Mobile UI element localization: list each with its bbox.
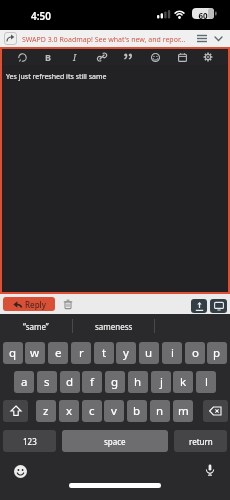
staticText: k — [180, 374, 187, 390]
button[interactable] — [95, 50, 109, 64]
staticText: g — [111, 374, 119, 390]
staticText: return — [189, 436, 213, 447]
button[interactable] — [210, 299, 227, 313]
staticText: c — [89, 403, 95, 419]
staticText: r — [79, 345, 84, 361]
staticText: l — [205, 374, 208, 390]
button[interactable] — [61, 297, 75, 311]
staticText: w — [30, 345, 40, 361]
button[interactable]: p — [207, 342, 227, 364]
button[interactable]: f — [82, 371, 102, 393]
button[interactable]: i — [162, 342, 182, 364]
staticText: t — [102, 345, 107, 361]
button[interactable]: SWAPD 3.0 Roadmap! See what's new, and r… — [0, 30, 230, 47]
staticText: i — [171, 345, 174, 361]
button[interactable]: b — [127, 400, 147, 422]
button[interactable]: h — [128, 371, 148, 393]
staticText: h — [134, 374, 142, 390]
staticText: d — [66, 374, 74, 390]
staticText: f — [90, 374, 94, 390]
staticText: j — [160, 374, 163, 390]
button[interactable]: a — [14, 371, 34, 393]
button[interactable]: B — [41, 50, 55, 64]
button[interactable]: n — [150, 400, 170, 422]
button[interactable] — [121, 50, 135, 64]
staticText: m — [178, 403, 189, 419]
button[interactable]: r — [71, 342, 91, 364]
staticText: x — [66, 403, 73, 419]
button[interactable]: j — [151, 371, 171, 393]
button[interactable]: x — [59, 400, 79, 422]
button[interactable]: g — [105, 371, 125, 393]
button[interactable]: m — [173, 400, 193, 422]
staticText: Reply — [25, 299, 46, 310]
staticText: v — [111, 403, 117, 419]
staticText: “same” — [23, 321, 49, 332]
button[interactable]: y — [116, 342, 136, 364]
button[interactable]: Yes just refreshed its still same — [2, 65, 228, 292]
staticText: n — [156, 403, 164, 419]
button[interactable]: z — [36, 400, 56, 422]
button[interactable]: w — [25, 342, 45, 364]
button[interactable]: s — [37, 371, 57, 393]
button[interactable] — [13, 464, 27, 478]
staticText: q — [9, 345, 17, 361]
staticText: I — [73, 51, 77, 63]
button[interactable]: l — [196, 371, 216, 393]
staticText: B — [45, 51, 51, 63]
staticText: u — [145, 345, 153, 361]
staticText: s — [44, 374, 50, 390]
button[interactable]: return — [174, 430, 227, 452]
staticText: 123 — [23, 436, 37, 447]
staticText: sameness — [95, 321, 133, 332]
button[interactable]: sameness — [73, 314, 154, 338]
staticText: space — [104, 436, 126, 447]
button[interactable]: 123 — [3, 430, 56, 452]
button[interactable] — [15, 50, 29, 64]
staticText: p — [213, 345, 221, 361]
staticText: o — [192, 345, 199, 361]
staticText: Yes just refreshed its still same — [6, 72, 107, 82]
button[interactable] — [175, 50, 189, 64]
staticText: y — [123, 345, 129, 361]
button[interactable]: c — [82, 400, 102, 422]
button[interactable] — [148, 50, 162, 64]
button[interactable]: I — [68, 50, 82, 64]
button[interactable]: space — [62, 430, 168, 452]
staticText: e — [55, 345, 62, 361]
button[interactable] — [203, 400, 228, 422]
button[interactable]: Reply — [3, 297, 55, 311]
button[interactable]: v — [104, 400, 124, 422]
staticText: z — [43, 403, 49, 419]
button[interactable]: “same” — [0, 314, 72, 338]
staticText: 4:50 — [31, 9, 51, 23]
button[interactable]: q — [3, 342, 23, 364]
staticText: SWAPD 3.0 Roadmap! See what's new, and r… — [22, 35, 190, 45]
staticText: 60 — [192, 10, 214, 21]
button[interactable] — [3, 400, 28, 422]
button[interactable]: d — [60, 371, 80, 393]
button[interactable] — [191, 299, 207, 313]
button[interactable]: o — [185, 342, 205, 364]
button[interactable]: e — [48, 342, 68, 364]
button[interactable]: u — [139, 342, 159, 364]
button[interactable] — [203, 463, 217, 477]
button[interactable]: k — [173, 371, 193, 393]
button[interactable]: t — [94, 342, 114, 364]
button[interactable] — [201, 50, 215, 64]
staticText: a — [21, 374, 28, 390]
staticText: b — [133, 403, 141, 419]
